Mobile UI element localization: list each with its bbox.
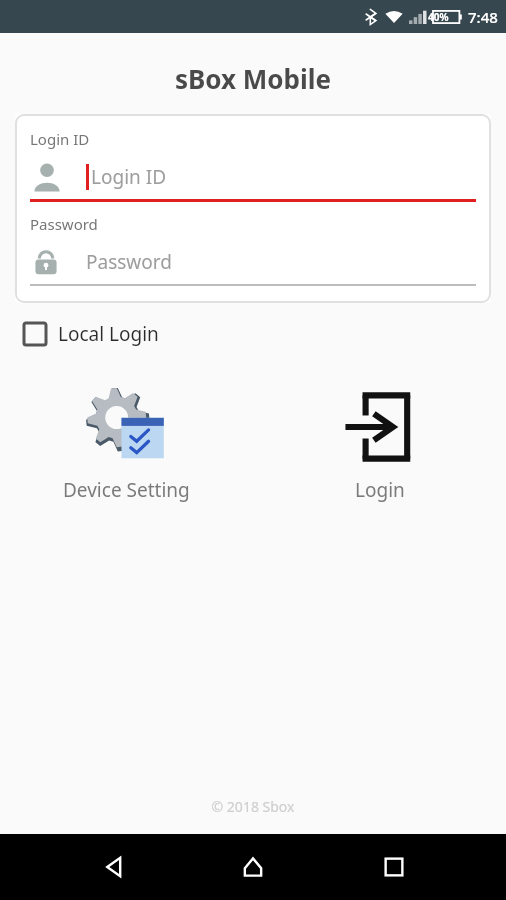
staticText: Login ID [91,164,167,190]
staticText: 7:48 [468,7,498,27]
button[interactable]: Login [253,375,506,509]
staticText: Login ID [30,129,90,149]
button[interactable]: Login ID [30,155,476,199]
button[interactable]: Home [225,839,281,895]
staticText: Device Setting [63,477,190,503]
staticText: Password [86,249,172,275]
staticText: 40% [428,10,449,24]
button[interactable]: Back [85,839,141,895]
staticText: Password [30,214,98,234]
staticText: Login [355,477,405,503]
button[interactable]: Password [30,240,476,284]
button[interactable]: Recents [366,839,422,895]
button[interactable]: Local Login [20,315,163,353]
staticText: © 2018 Sbox [0,797,506,816]
other: Login [334,381,426,473]
staticText: sBox Mobile [0,61,506,96]
staticText: Local Login [58,321,159,347]
button[interactable]: Device Setting [0,375,253,509]
